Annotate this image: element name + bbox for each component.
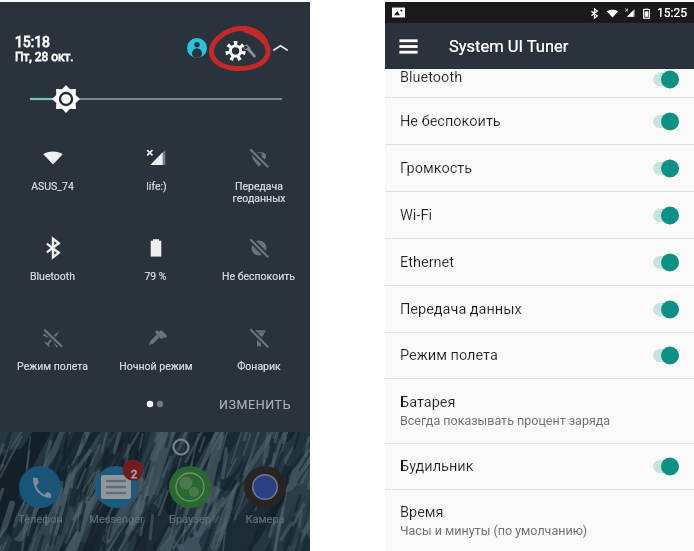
button[interactable]: Передача данных (385, 286, 694, 332)
button[interactable]: Громкость (385, 145, 694, 191)
staticText: 15:18 (15, 34, 50, 50)
staticText: Режим полета (17, 360, 88, 372)
button[interactable]: Не беспокоить (207, 223, 310, 313)
staticText: Фонарик (237, 360, 281, 372)
button[interactable]: Menu (386, 24, 430, 68)
staticText: Телефон (18, 513, 63, 526)
button[interactable]: Bluetooth (0, 223, 104, 313)
staticText: Ethernet (400, 254, 455, 271)
button[interactable]: Батарея (385, 379, 694, 443)
button[interactable]: Передача геоданных (207, 133, 310, 223)
staticText: Будильник (400, 458, 474, 475)
staticText: Режим полета (400, 347, 498, 364)
button[interactable]: User profile (184, 35, 210, 61)
staticText: Ночной режим (119, 360, 193, 372)
staticText: Bluetooth (400, 69, 463, 85)
button[interactable]: Камера (220, 513, 310, 526)
staticText: ИЗМЕНИТЬ (219, 397, 292, 412)
button[interactable]: Режим полета (385, 333, 694, 378)
staticText: Wi-Fi (400, 207, 432, 224)
staticText: Передача геоданных (232, 180, 286, 205)
button[interactable]: Ethernet (385, 239, 694, 285)
button[interactable]: Будильник (385, 444, 694, 489)
staticText: Передача данных (400, 301, 522, 318)
button[interactable]: Collapse (269, 37, 291, 59)
button[interactable]: Bluetooth (385, 69, 694, 97)
staticText: Часы и минуты (по умолчанию) (400, 523, 588, 538)
button[interactable]: 79 % (104, 223, 207, 313)
staticText: Камера (245, 513, 285, 526)
staticText: 2 (131, 468, 138, 481)
button[interactable]: Браузер (145, 513, 235, 526)
button[interactable]: Режим полета (0, 313, 104, 391)
staticText: 15:25 (657, 6, 687, 20)
staticText: Пт, 28 окт. (15, 50, 74, 64)
button[interactable]: Телефон (0, 513, 85, 526)
staticText: Не беспокоить (400, 113, 501, 130)
button[interactable]: Ночной режим (104, 313, 207, 391)
staticText: Батарея (400, 394, 456, 411)
staticText: System UI Tuner (449, 37, 569, 56)
button[interactable]: Не беспокоить (385, 98, 694, 144)
button[interactable]: Messenger (71, 513, 161, 526)
button[interactable]: Время (385, 490, 694, 551)
button[interactable]: ИЗМЕНИТЬ (215, 393, 296, 416)
button[interactable]: ASUS_74 (0, 133, 104, 223)
button[interactable]: life:) (104, 133, 207, 223)
staticText: Bluetooth (30, 270, 75, 282)
staticText: life:) (146, 180, 167, 192)
staticText: Не беспокоить (222, 270, 295, 282)
staticText: Messenger (89, 513, 144, 526)
button[interactable]: Фонарик (207, 313, 310, 391)
button[interactable]: Wi-Fi (385, 192, 694, 238)
staticText: Браузер (169, 513, 211, 526)
button[interactable]: System UI Tuner (222, 32, 260, 70)
staticText: ASUS_74 (31, 180, 74, 192)
staticText: Громкость (400, 160, 473, 177)
staticText: Всегда показывать процент заряда (400, 413, 611, 428)
staticText: 79 % (144, 270, 167, 282)
staticText: Время (400, 504, 444, 521)
